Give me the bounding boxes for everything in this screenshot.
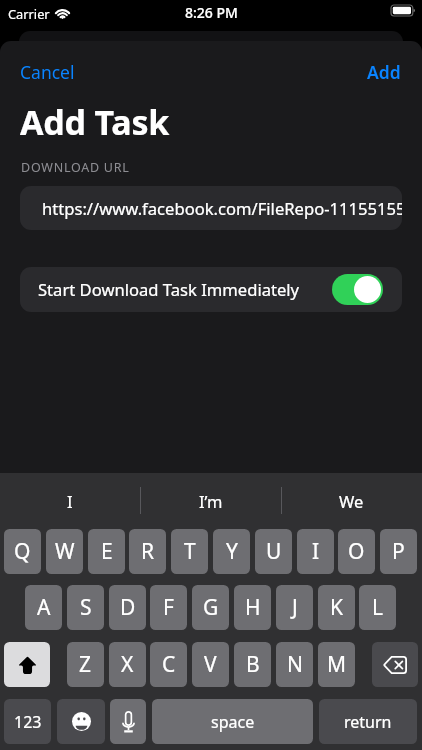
staticText: A bbox=[37, 593, 51, 622]
staticText: J bbox=[292, 593, 298, 622]
button[interactable]: N bbox=[276, 642, 313, 687]
button[interactable]: E bbox=[88, 529, 125, 574]
button[interactable]: V bbox=[192, 642, 229, 687]
staticText: Add bbox=[367, 60, 401, 84]
staticText: DOWNLOAD URL bbox=[21, 159, 130, 176]
staticText: return bbox=[344, 711, 392, 733]
button[interactable]: 123 bbox=[4, 699, 51, 744]
button[interactable]: C bbox=[150, 642, 187, 687]
button[interactable]: Start Download Task Immediately bbox=[20, 267, 402, 312]
staticText: K bbox=[330, 593, 343, 622]
button[interactable]: U bbox=[255, 529, 292, 574]
staticText: space bbox=[211, 711, 255, 733]
button[interactable]: H bbox=[234, 585, 271, 630]
staticText: W bbox=[55, 537, 75, 566]
staticText: S bbox=[80, 593, 92, 622]
button[interactable]: Cancel bbox=[20, 60, 75, 84]
staticText: I’m bbox=[199, 490, 223, 512]
staticText: X bbox=[121, 650, 134, 679]
button[interactable]: T bbox=[171, 529, 208, 574]
button[interactable]: Shift bbox=[4, 642, 50, 687]
staticText: https://www.facebook.com/FileRepo-111551… bbox=[42, 197, 402, 220]
button[interactable]: Z bbox=[67, 642, 104, 687]
staticText: We bbox=[339, 490, 364, 512]
button[interactable]: D bbox=[109, 585, 146, 630]
staticText: V bbox=[204, 650, 217, 679]
staticText: 123 bbox=[14, 711, 42, 733]
button[interactable]: K bbox=[318, 585, 355, 630]
button[interactable]: G bbox=[192, 585, 229, 630]
staticText: Start Download Task Immediately bbox=[38, 278, 300, 301]
button[interactable]: B bbox=[234, 642, 271, 687]
button[interactable]: L bbox=[359, 585, 396, 630]
staticText: Y bbox=[226, 537, 238, 566]
button[interactable]: Backspace bbox=[372, 642, 418, 687]
staticText: Cancel bbox=[20, 60, 75, 84]
staticText: P bbox=[392, 537, 405, 566]
staticText: I bbox=[67, 490, 73, 512]
staticText: R bbox=[141, 537, 155, 566]
button[interactable]: X bbox=[109, 642, 146, 687]
button[interactable]: O bbox=[338, 529, 375, 574]
staticText: D bbox=[120, 593, 136, 622]
button[interactable]: J bbox=[276, 585, 313, 630]
staticText: N bbox=[287, 650, 303, 679]
button[interactable]: I’m bbox=[140, 473, 281, 529]
button[interactable]: F bbox=[150, 585, 187, 630]
staticText: F bbox=[163, 593, 174, 622]
button[interactable]: return bbox=[319, 699, 417, 744]
staticText: H bbox=[245, 593, 261, 622]
staticText: Carrier bbox=[8, 5, 50, 22]
staticText: 8:26 PM bbox=[185, 3, 238, 22]
staticText: I bbox=[312, 537, 320, 566]
button[interactable]: https://www.facebook.com/FileRepo-111551… bbox=[20, 186, 402, 230]
button[interactable]: space bbox=[152, 699, 313, 744]
staticText: Q bbox=[14, 537, 31, 566]
staticText: B bbox=[246, 650, 260, 679]
button[interactable]: S bbox=[67, 585, 104, 630]
button[interactable]: Add bbox=[367, 60, 401, 84]
button[interactable]: P bbox=[380, 529, 417, 574]
staticText: T bbox=[184, 537, 196, 566]
button[interactable]: Q bbox=[4, 529, 41, 574]
staticText: O bbox=[348, 537, 365, 566]
staticText: Z bbox=[79, 650, 92, 679]
button[interactable]: M bbox=[318, 642, 355, 687]
button[interactable]: I bbox=[297, 529, 334, 574]
button[interactable]: Dictation bbox=[110, 699, 146, 744]
staticText: E bbox=[101, 537, 113, 566]
button[interactable]: R bbox=[129, 529, 166, 574]
staticText: C bbox=[162, 650, 176, 679]
staticText: M bbox=[327, 650, 347, 679]
button[interactable]: Emoji bbox=[57, 699, 105, 744]
staticText: Add Task bbox=[20, 99, 170, 145]
staticText: L bbox=[372, 593, 384, 622]
button[interactable]: Y bbox=[213, 529, 250, 574]
staticText: U bbox=[266, 537, 282, 566]
button[interactable]: We bbox=[281, 473, 422, 529]
staticText: G bbox=[203, 593, 219, 622]
button[interactable]: A bbox=[25, 585, 62, 630]
button[interactable]: I bbox=[0, 473, 140, 529]
button[interactable]: W bbox=[46, 529, 83, 574]
